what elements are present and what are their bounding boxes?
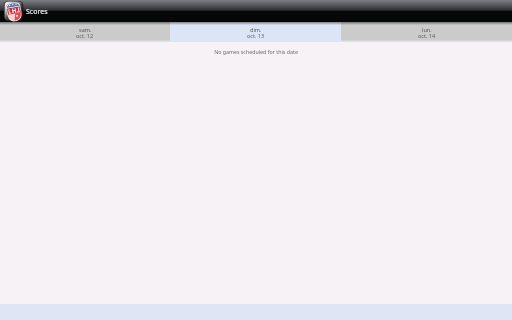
staticText: sam. (79, 26, 92, 33)
staticText: oct. 12 (76, 32, 94, 39)
staticText: oct. 14 (418, 32, 436, 39)
button[interactable]: sam. (0, 22, 170, 42)
staticText: lun. (422, 26, 432, 33)
staticText: Scores (26, 7, 48, 17)
button[interactable]: lun. (341, 22, 512, 42)
staticText: No games scheduled for this date (0, 48, 512, 55)
staticText: dim. (250, 26, 262, 33)
button[interactable]: dim. (170, 22, 341, 42)
staticText: oct. 13 (247, 32, 265, 39)
button[interactable]: Home (0, 0, 24, 22)
